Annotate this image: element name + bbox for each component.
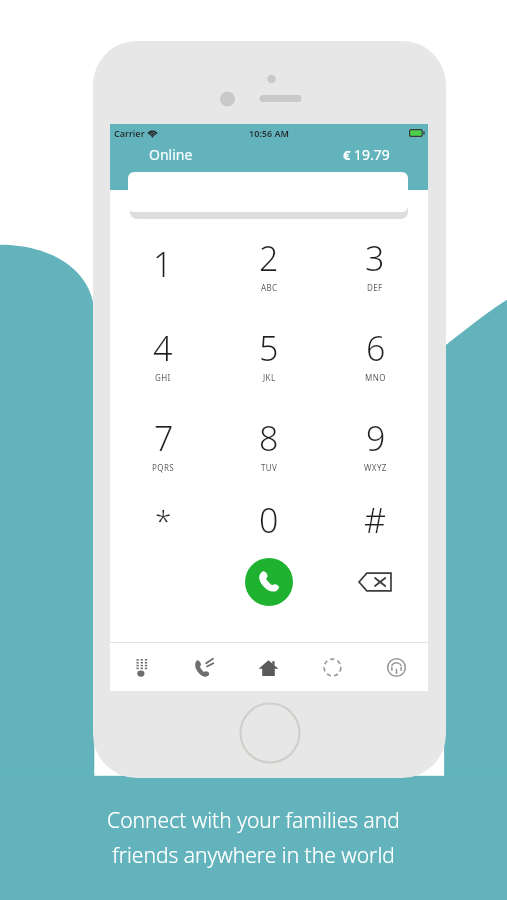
button[interactable]: Home [236, 643, 300, 691]
button[interactable] [128, 172, 410, 217]
staticText: 3 [365, 235, 385, 281]
button[interactable]: 4 [110, 309, 216, 399]
staticText: 5 [259, 325, 279, 371]
button[interactable]: 6 [322, 309, 428, 399]
staticText: 6 [366, 325, 386, 371]
staticText: GHI [155, 372, 171, 383]
button[interactable]: 2 [216, 219, 322, 309]
staticText: PQRS [152, 462, 175, 473]
staticText: € [343, 146, 351, 164]
staticText: 10:56 AM [249, 127, 289, 139]
staticText: DEF [367, 282, 383, 293]
staticText: 0 [259, 497, 279, 543]
button[interactable]: 8 [216, 399, 322, 489]
staticText: Carrier [114, 127, 145, 139]
button[interactable]: Recent calls [173, 643, 236, 691]
staticText: * [155, 500, 172, 541]
staticText: 8 [259, 415, 279, 461]
button[interactable]: Online [149, 145, 193, 164]
button[interactable]: Call [245, 558, 293, 606]
staticText: WXYZ [364, 462, 387, 473]
staticText: Connect with your families and [107, 806, 400, 835]
button[interactable]: Keypad [110, 643, 173, 691]
staticText: 2 [259, 235, 279, 281]
button[interactable]: Support [364, 643, 428, 691]
button[interactable]: 5 [216, 309, 322, 399]
other: Home button [239, 702, 301, 764]
button[interactable]: 3 [322, 219, 428, 309]
staticText: ABC [261, 282, 278, 293]
staticText: 9 [366, 415, 386, 461]
staticText: MNO [365, 372, 386, 383]
staticText: 4 [153, 325, 173, 371]
button[interactable]: Delete [322, 551, 428, 613]
button[interactable]: * [110, 489, 216, 551]
staticText: TUV [261, 462, 278, 473]
button[interactable]: 9 [322, 399, 428, 489]
button[interactable]: € [343, 145, 390, 164]
button[interactable]: 7 [110, 399, 216, 489]
staticText: # [364, 497, 386, 543]
staticText: friends anywhere in the world [112, 841, 395, 870]
staticText: 1 [153, 241, 173, 287]
staticText: 19.79 [354, 145, 390, 164]
staticText: JKL [263, 372, 276, 383]
button[interactable]: 0 [216, 489, 322, 551]
staticText: 7 [154, 415, 174, 461]
button[interactable]: # [322, 489, 428, 551]
button[interactable]: Refresh [300, 643, 364, 691]
button[interactable]: 1 [110, 219, 216, 309]
